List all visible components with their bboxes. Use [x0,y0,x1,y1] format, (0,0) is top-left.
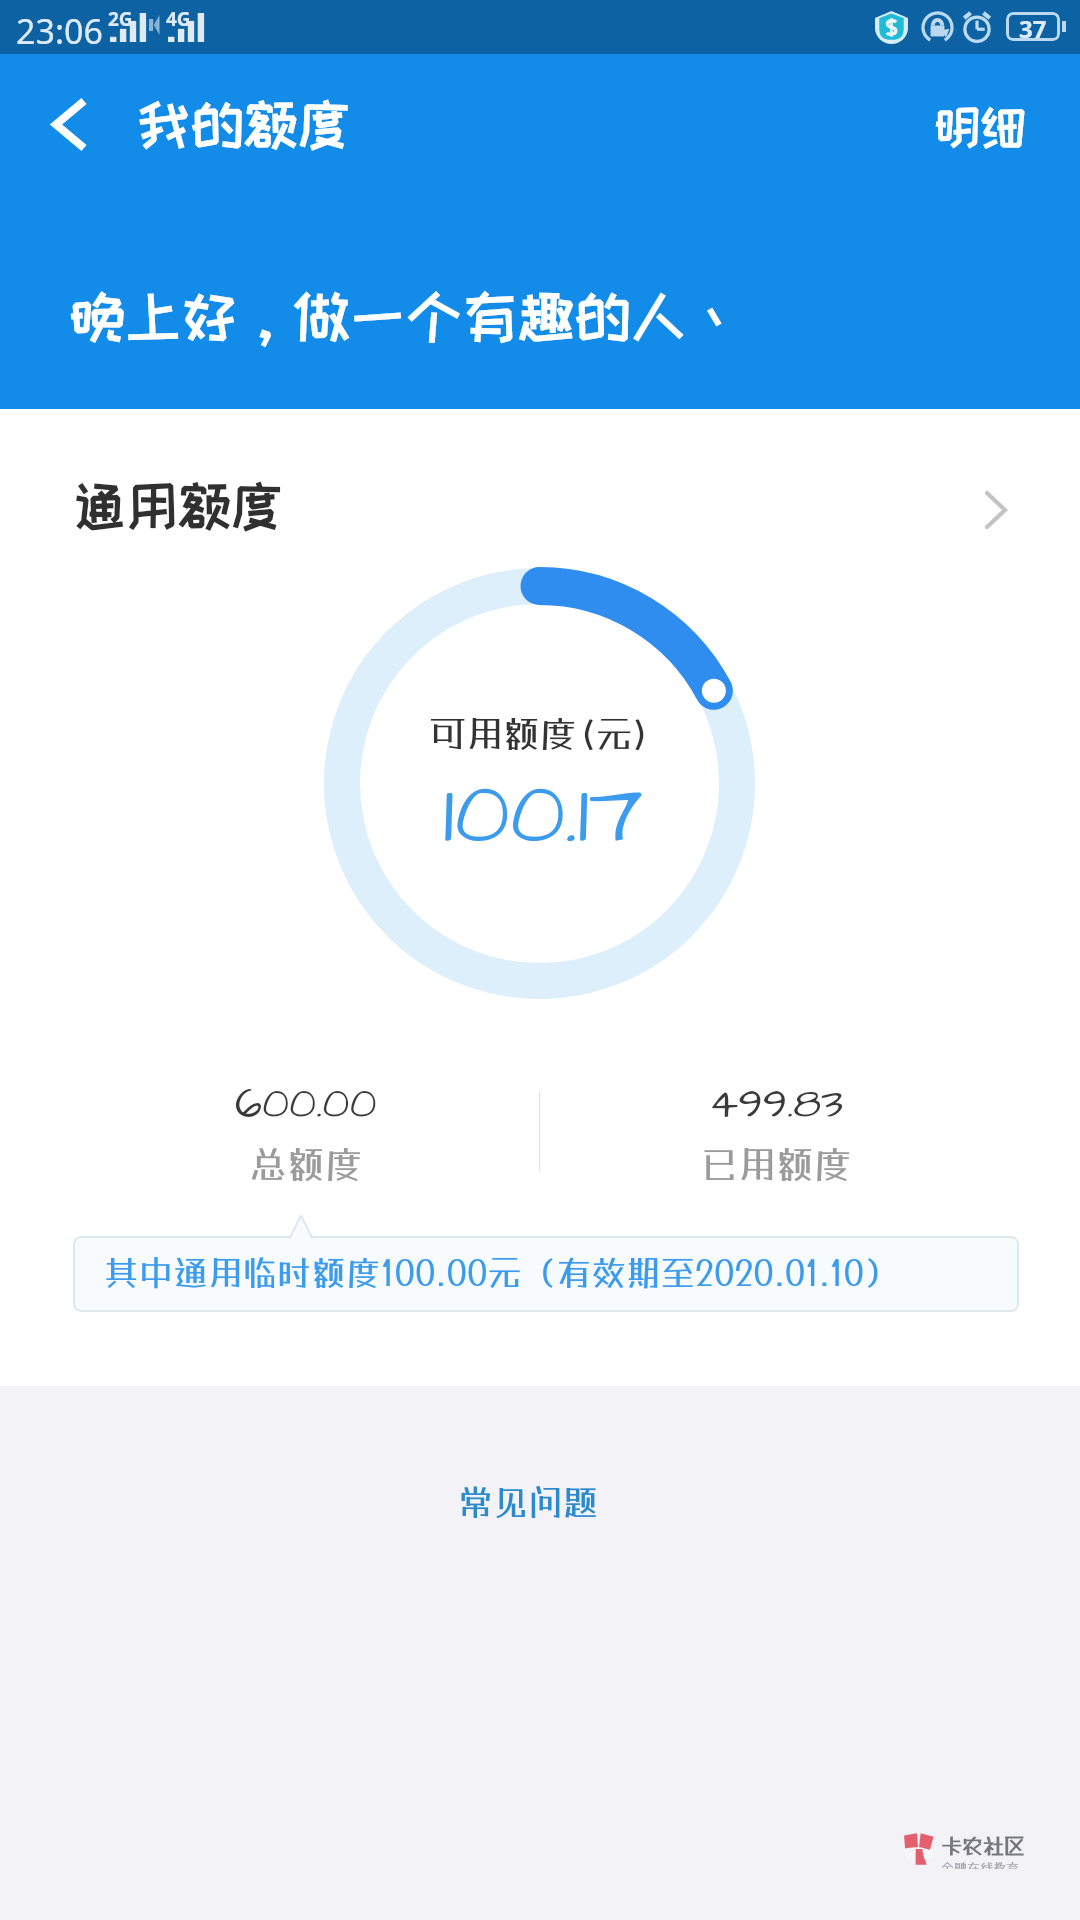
staticText: 4G [166,6,191,32]
staticText: 晚上好，做一个有趣的人丶 [69,285,743,346]
staticText: 通用额度 [73,477,283,534]
staticText: 100.17 [443,754,644,876]
button[interactable]: 通用额度 [0,441,1080,569]
staticText: 2G [108,6,133,32]
staticText: 明细 [934,102,1026,152]
staticText: 卡农社区 [941,1833,1025,1858]
staticText: 已用额度 [700,1142,853,1187]
staticText: 600.00 [235,1075,377,1135]
button[interactable]: 常见问题 [438,1470,619,1535]
staticText: 其中通用临时额度100.00元（有效期至2020.01.10） [104,1252,899,1293]
staticText: 金融在线教育 [941,1860,1020,1869]
staticText: 常见问题 [458,1482,599,1523]
button[interactable]: 明细 [918,86,1042,168]
staticText: 总额度 [249,1142,364,1187]
staticText: 我的额度 [137,95,351,153]
staticText: 可用额度(元) [429,712,651,756]
staticText: 37 [1019,12,1047,41]
button[interactable]: Back [16,86,116,162]
staticText: 499.83 [709,1075,844,1135]
staticText: 23:06 [16,8,103,54]
